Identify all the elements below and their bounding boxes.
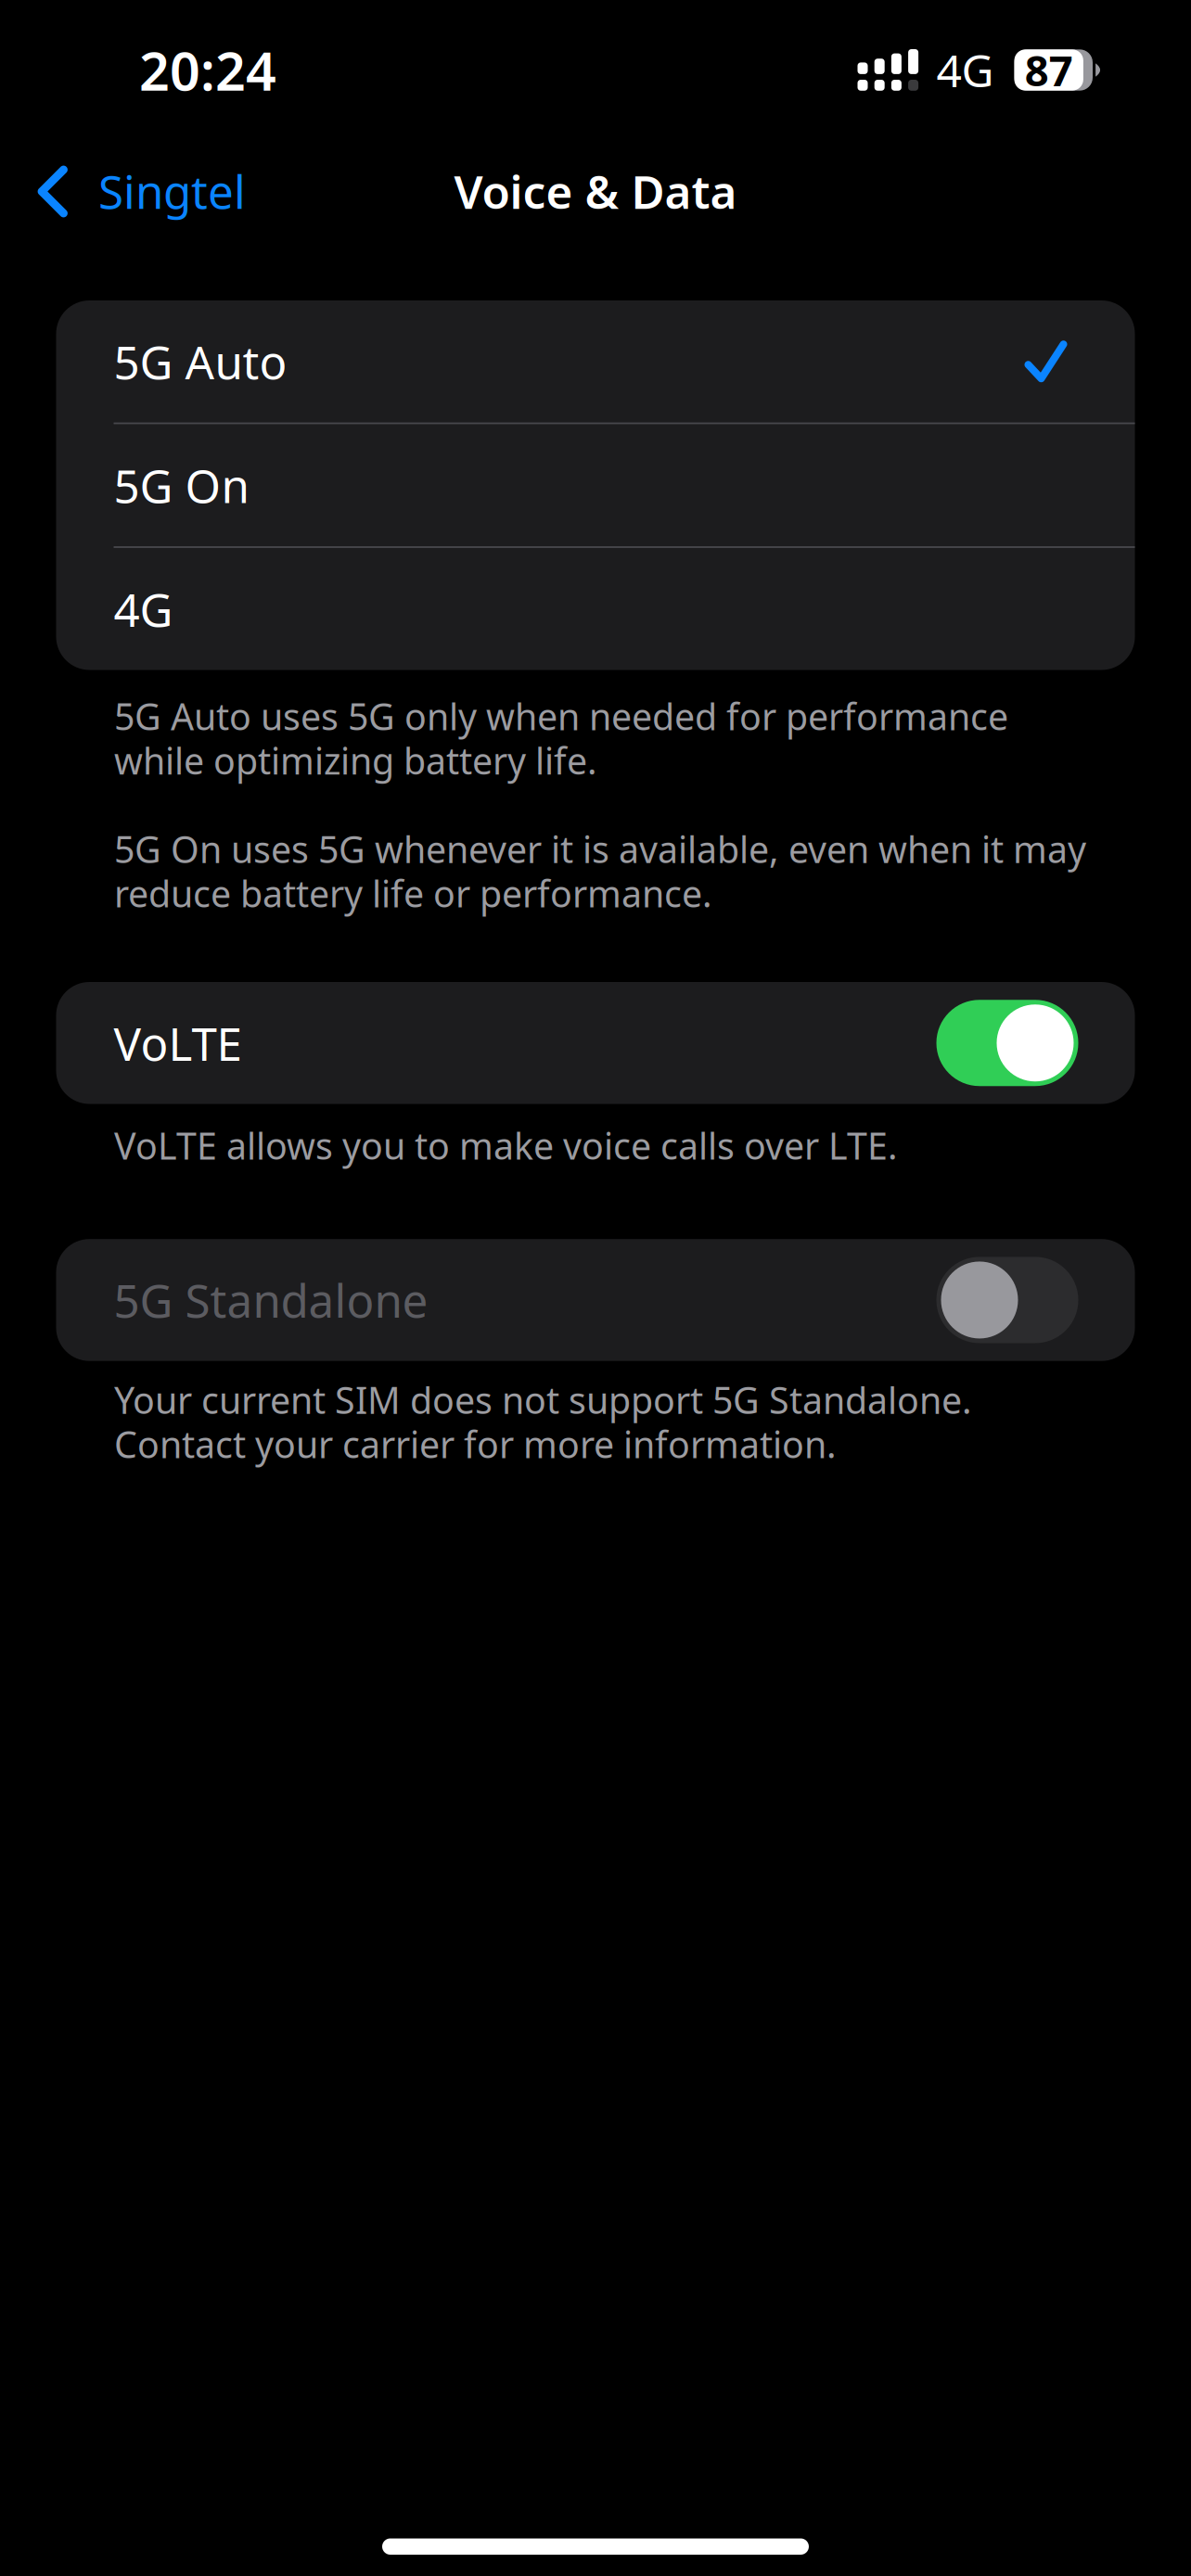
button[interactable]: VoLTE — [56, 982, 1135, 1104]
staticText: 5G Auto — [114, 331, 287, 392]
staticText: VoLTE allows you to make voice calls ove… — [114, 1121, 898, 1170]
staticText: 87 — [1025, 42, 1073, 98]
staticText: 5G Standalone — [114, 1270, 428, 1330]
staticText: Your current SIM does not support 5G Sta… — [114, 1375, 972, 1425]
staticText: 5G On uses 5G whenever it is available, … — [114, 824, 1086, 874]
staticText: 4G — [936, 40, 994, 99]
staticText: reduce battery life or performance. — [114, 868, 712, 918]
staticText: while optimizing battery life. — [114, 736, 597, 785]
staticText: 4G — [114, 579, 173, 639]
staticText: Singtel — [98, 161, 246, 221]
staticText: 5G Auto uses 5G only when needed for per… — [114, 691, 1008, 741]
button[interactable]: 4G — [56, 548, 1135, 670]
staticText: Voice & Data — [454, 161, 737, 221]
staticText: Contact your carrier for more informatio… — [114, 1419, 837, 1469]
staticText: VoLTE — [114, 1013, 242, 1073]
button[interactable]: 5G Auto — [56, 300, 1135, 422]
button[interactable]: Back to Singtel — [0, 140, 268, 242]
staticText: 5G On — [114, 455, 249, 516]
button[interactable]: 5G Standalone — [56, 1239, 1135, 1361]
staticText: 20:24 — [139, 35, 276, 105]
button[interactable]: 5G On — [56, 424, 1135, 546]
